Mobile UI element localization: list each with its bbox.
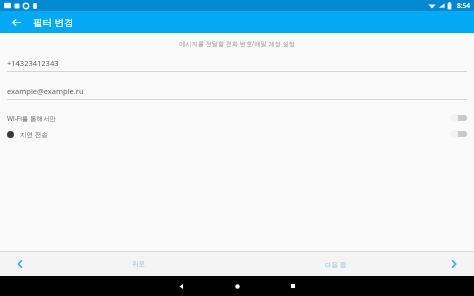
staticText: 지연 전송 <box>20 130 48 139</box>
button[interactable]: Next <box>434 252 474 276</box>
button[interactable]: Previous <box>0 252 40 276</box>
button[interactable]: example@example.ru <box>0 86 474 100</box>
button[interactable]: Home <box>209 276 265 296</box>
button[interactable]: Back <box>8 14 24 30</box>
staticText: 메시지를 전달할 전화 번호/메일 계정 설정 <box>0 39 474 47</box>
button[interactable]: 위로 <box>40 252 237 276</box>
button[interactable]: 지연 전송 <box>0 126 474 142</box>
staticText: 다음 중 <box>325 260 347 269</box>
staticText: 8:54 <box>457 1 470 10</box>
button[interactable]: Back <box>153 276 209 296</box>
button[interactable]: Toggle <box>449 113 467 123</box>
button[interactable]: Wi-Fi를 통해서만 <box>0 110 474 126</box>
staticText: 필터 변경 <box>33 16 74 29</box>
button[interactable]: Recents <box>265 276 321 296</box>
button[interactable]: +14323412343 <box>0 58 474 72</box>
staticText: example@example.ru <box>7 86 84 96</box>
staticText: 위로 <box>132 260 145 268</box>
staticText: +14323412343 <box>7 58 59 68</box>
button[interactable]: Toggle <box>449 129 467 139</box>
staticText: Wi-Fi를 통해서만 <box>7 114 57 123</box>
button[interactable]: 다음 중 <box>237 252 434 276</box>
